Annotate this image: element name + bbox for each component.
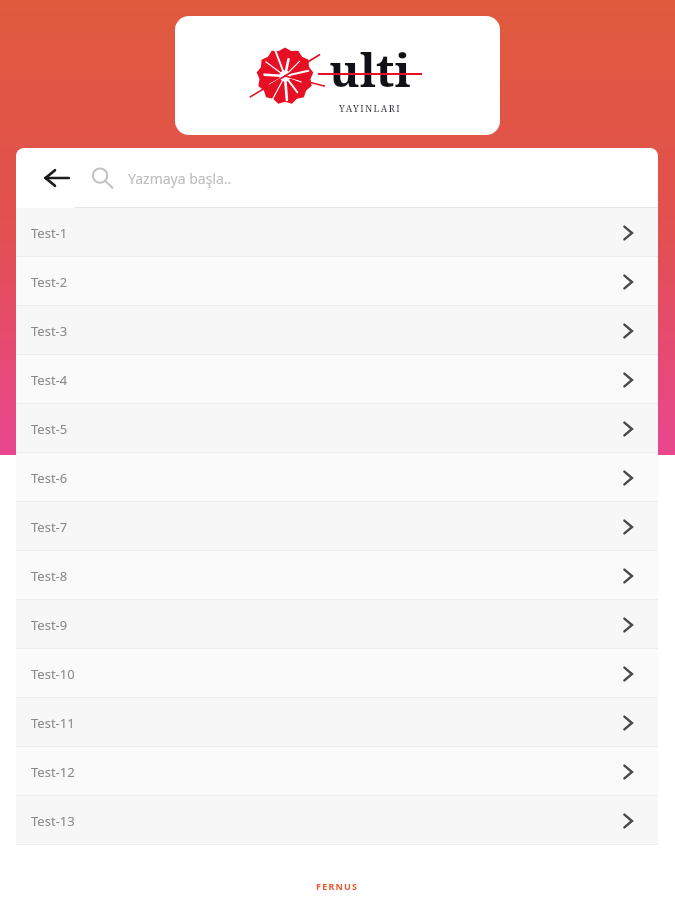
staticText: YAYINLARI bbox=[339, 102, 402, 114]
button[interactable]: Test-3 bbox=[16, 306, 658, 355]
staticText: Test-12 bbox=[31, 763, 75, 781]
staticText: FERNUS bbox=[316, 880, 359, 892]
staticText: Test-2 bbox=[31, 273, 68, 291]
staticText: ulti bbox=[329, 38, 411, 101]
button[interactable]: Test-13 bbox=[16, 796, 658, 845]
button[interactable]: Test-4 bbox=[16, 355, 658, 404]
staticText: Test-1 bbox=[31, 224, 68, 242]
button[interactable]: Ulti Yayınları logo bbox=[175, 16, 500, 135]
staticText: Test-9 bbox=[31, 616, 68, 634]
button[interactable]: Test-10 bbox=[16, 649, 658, 698]
button[interactable]: Test-7 bbox=[16, 502, 658, 551]
button[interactable]: Test-11 bbox=[16, 698, 658, 747]
staticText: Test-11 bbox=[31, 714, 75, 732]
staticText: Test-3 bbox=[31, 322, 68, 340]
button[interactable]: Test-5 bbox=[16, 404, 658, 453]
staticText: Test-4 bbox=[31, 371, 68, 389]
button[interactable]: Test-6 bbox=[16, 453, 658, 502]
button[interactable]: Yazmaya başla.. bbox=[80, 148, 658, 208]
staticText: Test-5 bbox=[31, 420, 68, 438]
staticText: Test-13 bbox=[31, 812, 75, 830]
button[interactable]: Test-12 bbox=[16, 747, 658, 796]
button[interactable]: Test-9 bbox=[16, 600, 658, 649]
button[interactable]: Test-1 bbox=[16, 208, 658, 257]
staticText: Yazmaya başla.. bbox=[128, 169, 232, 188]
button[interactable]: Test-2 bbox=[16, 257, 658, 306]
staticText: Test-8 bbox=[31, 567, 68, 585]
button[interactable]: Back bbox=[34, 155, 80, 201]
staticText: Test-6 bbox=[31, 469, 68, 487]
button[interactable]: Test-8 bbox=[16, 551, 658, 600]
staticText: Test-10 bbox=[31, 665, 75, 683]
staticText: Test-7 bbox=[31, 518, 68, 536]
